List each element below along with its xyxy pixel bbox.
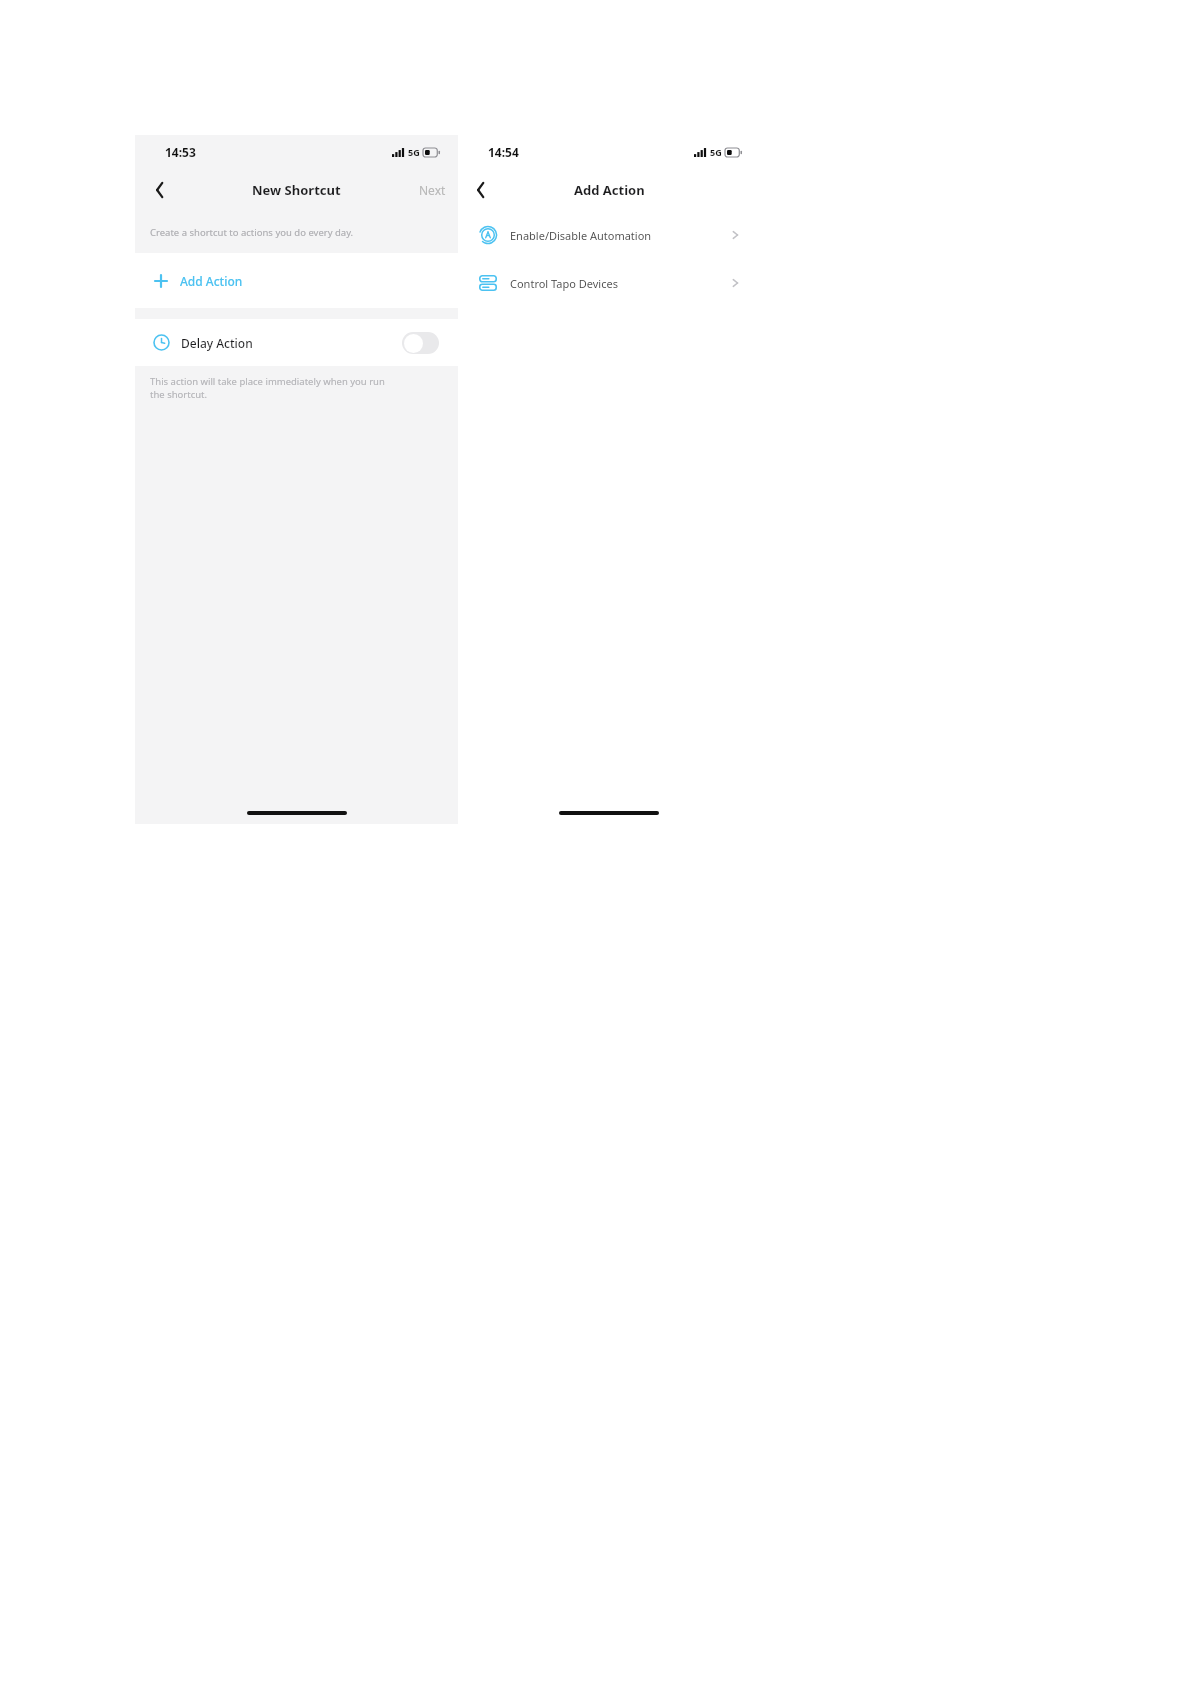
staticText: 5G [710, 146, 722, 158]
staticText: New Shortcut [252, 181, 341, 199]
button[interactable]: Control Tapo Devices [458, 259, 760, 307]
button[interactable]: Delay Action [135, 319, 458, 366]
staticText: Delay Action [181, 335, 253, 351]
staticText: Add Action [180, 273, 243, 289]
button[interactable]: Delay Action toggle [402, 332, 439, 354]
staticText: This action will take place immediately … [150, 375, 385, 401]
button[interactable]: Add Action [135, 253, 458, 308]
staticText: 14:54 [488, 144, 519, 160]
button[interactable]: Enable/Disable Automation [458, 211, 760, 259]
button[interactable]: Back [466, 174, 498, 206]
staticText: Control Tapo Devices [510, 276, 618, 291]
staticText: 5G [408, 146, 420, 158]
staticText: 14:53 [165, 144, 196, 160]
button[interactable]: Back [145, 174, 177, 206]
staticText: Add Action [574, 181, 645, 199]
staticText: Create a shortcut to actions you do ever… [150, 226, 354, 239]
staticText: Next [419, 182, 446, 198]
button[interactable]: Next [407, 176, 458, 204]
staticText: Enable/Disable Automation [510, 228, 652, 243]
